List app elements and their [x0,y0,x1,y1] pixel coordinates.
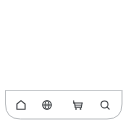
button[interactable]: Discover [34,92,60,118]
button[interactable]: Cart [65,92,91,118]
button[interactable]: Search [92,92,118,118]
button[interactable]: Home [8,92,34,118]
